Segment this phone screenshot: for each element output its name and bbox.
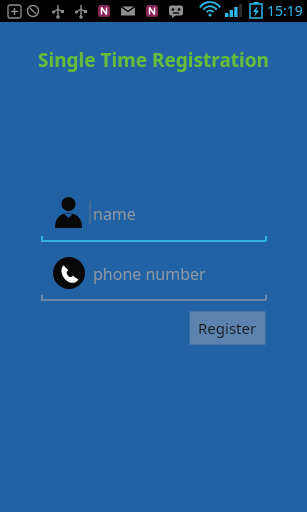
- staticText: Single Time Registration: [38, 47, 269, 73]
- other: Phone number: [53, 257, 85, 289]
- button[interactable]: Register: [190, 312, 265, 344]
- button[interactable]: Phone number: [41, 253, 266, 297]
- other: Name: [52, 195, 85, 228]
- staticText: Register: [198, 318, 257, 338]
- staticText: 15:19: [267, 1, 303, 20]
- staticText: phone number: [93, 263, 206, 285]
- staticText: name: [93, 203, 136, 225]
- button[interactable]: Name: [41, 192, 266, 238]
